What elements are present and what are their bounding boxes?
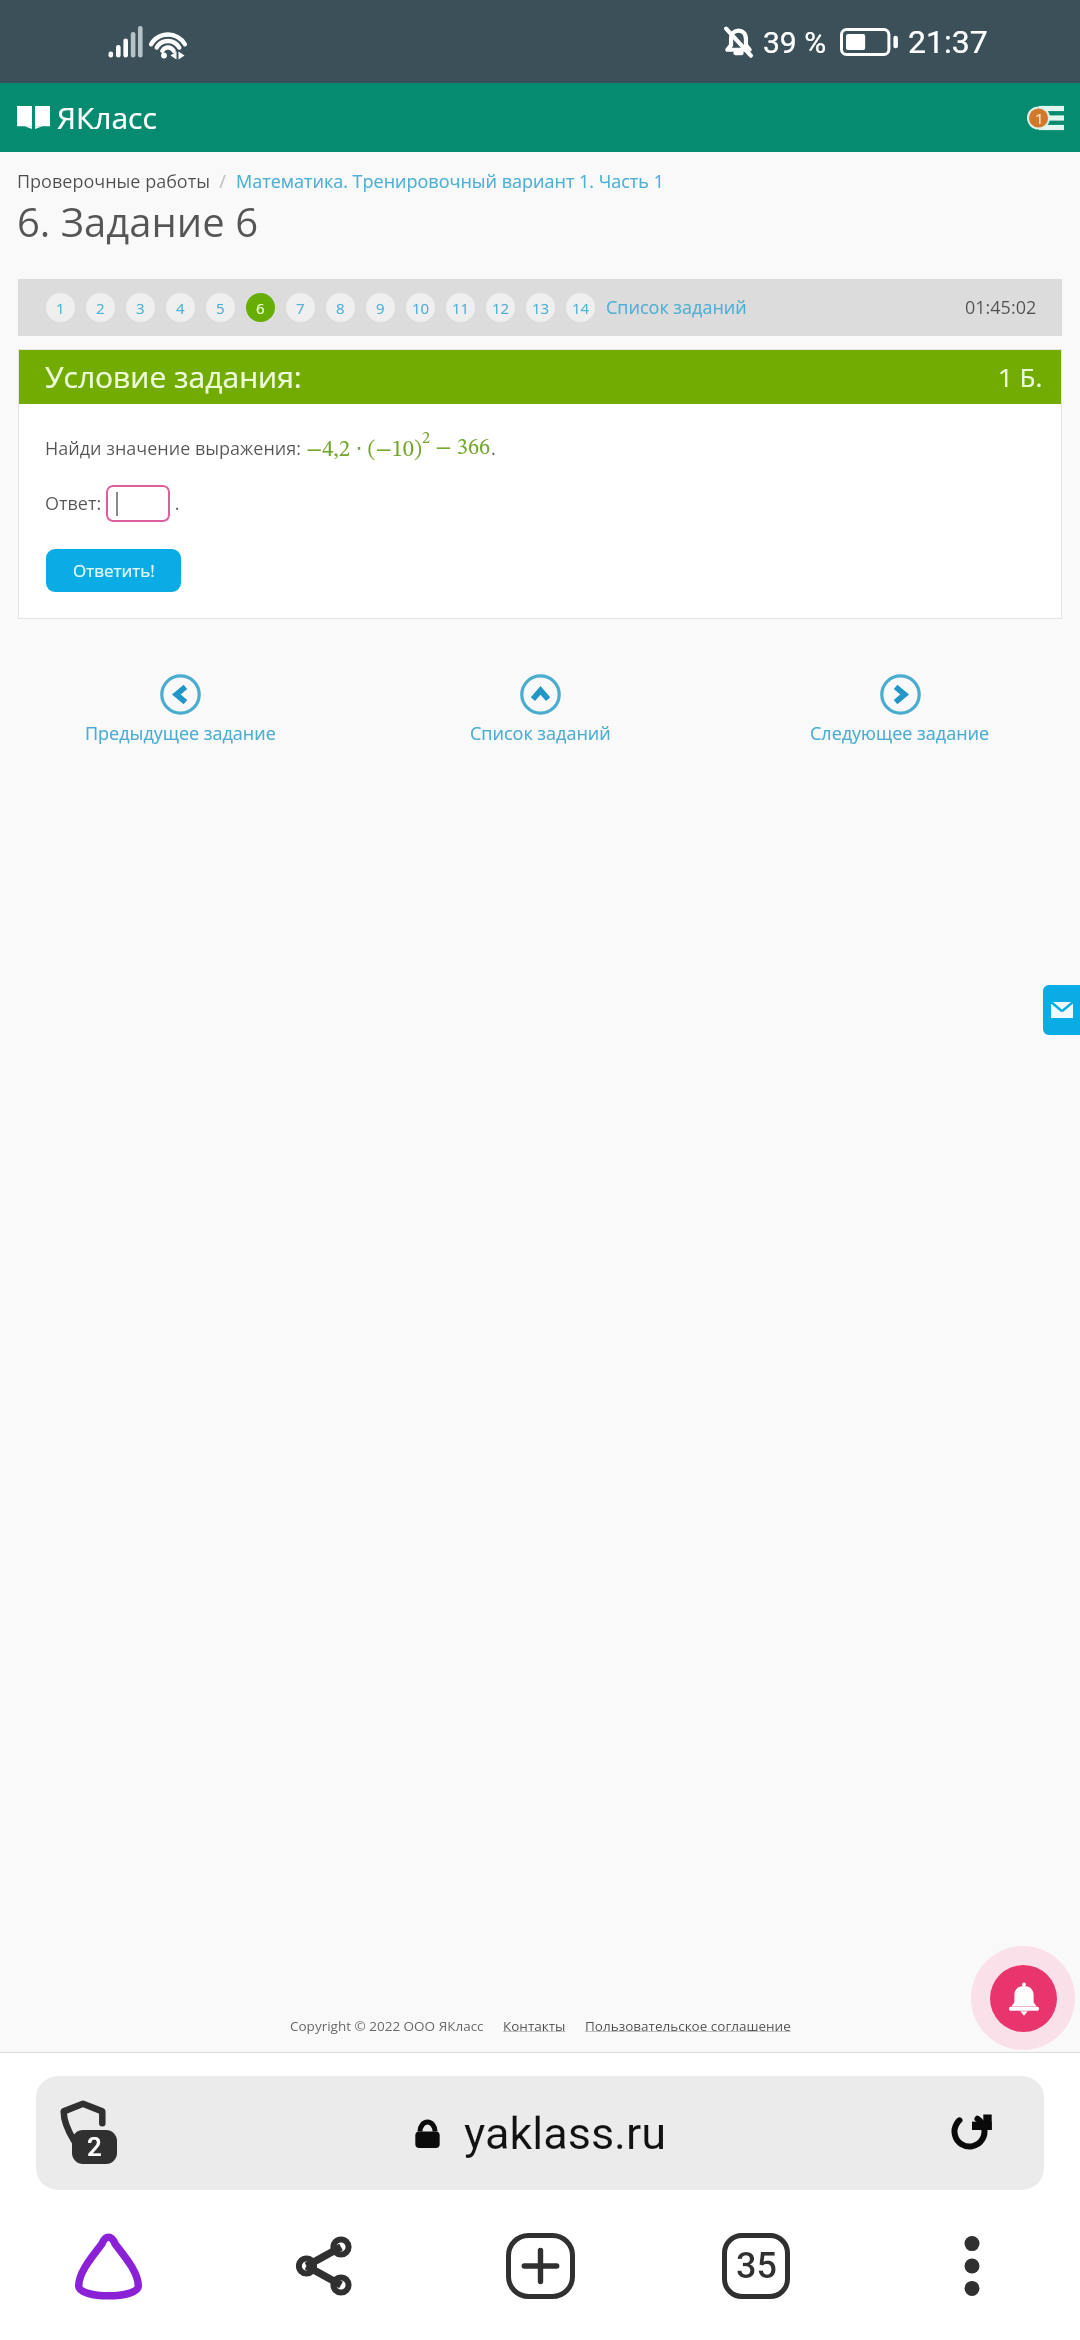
staticText: 7 [296,298,305,318]
staticText: 12 [492,298,510,318]
button[interactable]: Список заданий [464,674,617,746]
staticText: . [170,491,180,516]
button[interactable]: Проверочные работы [17,169,210,194]
button[interactable] [106,485,170,522]
button[interactable]: 10 [406,293,435,322]
button[interactable]: Список заданий [606,295,747,320]
button[interactable]: 4 [166,293,195,322]
staticText: 1 [1035,108,1044,128]
button[interactable]: 2 [86,293,115,322]
staticText: 39 % [763,25,827,60]
staticText: yaklass.ru [464,2107,667,2160]
button[interactable]: ЯКласс [0,97,165,138]
staticText: 11 [452,298,470,318]
staticText: Список заданий [470,721,611,746]
button[interactable]: 11 [446,293,475,322]
staticText: Предыдущее задание [85,721,276,746]
staticText: 21:37 [908,23,988,61]
staticText: −4,2 ⋅ (−10) [306,435,422,461]
staticText: ЯКласс [57,97,157,138]
staticText: Ответ: [45,491,106,516]
button[interactable]: Следующее задание [804,674,996,746]
staticText: Найди значение выражения: [45,436,306,461]
staticText: Copyright © 2022 ООО ЯКласс [290,2017,484,2035]
button[interactable]: Блокировщик рекламы [56,2091,140,2175]
button[interactable]: 9 [366,293,395,322]
button[interactable]: 13 [526,293,555,322]
button[interactable]: Поделиться [279,2233,369,2299]
button[interactable]: 5 [206,293,235,322]
button[interactable]: Блокировщик рекламы [36,2076,1044,2190]
button[interactable]: Меню [1008,90,1070,146]
staticText: 6. Задание 6 [17,194,258,248]
staticText: 4 [176,298,185,318]
button[interactable]: 12 [486,293,515,322]
staticText: Ответить! [73,559,155,582]
staticText: 01:45:02 [965,295,1037,320]
button[interactable]: 1 [46,293,75,322]
staticText: 1 Б. [998,359,1043,394]
staticText: / [210,169,236,194]
staticText: 5 [216,298,225,318]
button[interactable]: Написать [1043,985,1080,1035]
button[interactable]: 8 [326,293,355,322]
button[interactable]: 7 [286,293,315,322]
button[interactable]: Контакты [503,2017,566,2035]
staticText: 2 [422,431,430,447]
button[interactable]: Вкладки [711,2233,801,2299]
staticText: 2 [87,2132,102,2162]
staticText: 35 [736,2245,777,2287]
staticText: 8 [336,298,345,318]
staticText: 3 [136,298,145,318]
button[interactable]: Ответить! [46,549,181,592]
button[interactable]: 14 [566,293,595,322]
staticText: . [491,436,496,461]
button[interactable]: Уведомления [971,1946,1075,2050]
button[interactable]: Математика. Тренировочный вариант 1. Час… [236,169,664,194]
staticText: 2 [96,298,105,318]
staticText: Следующее задание [810,721,990,746]
staticText: 10 [412,298,430,318]
staticText: Условие задания: [45,356,302,397]
staticText: 6 [256,298,265,318]
staticText: − 366 [430,437,491,460]
button[interactable]: Пользовательское соглашение [585,2017,791,2035]
button[interactable]: Новая вкладка [495,2233,585,2299]
button[interactable]: Ещё [927,2233,1017,2299]
button[interactable]: Яндекс [63,2233,153,2299]
staticText: 1 [56,298,65,318]
button[interactable]: 3 [126,293,155,322]
staticText: 9 [376,298,385,318]
staticText: 14 [572,298,590,318]
button[interactable]: Предыдущее задание [79,674,282,746]
button[interactable]: 6 [246,293,275,322]
staticText: 13 [532,298,550,318]
button[interactable]: Обновить [939,2101,1003,2165]
